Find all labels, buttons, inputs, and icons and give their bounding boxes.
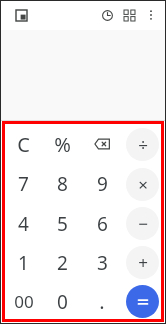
staticText: % <box>54 131 71 158</box>
staticText: C <box>17 131 30 158</box>
button[interactable]: History <box>96 4 118 26</box>
staticText: 4 <box>18 211 29 237</box>
button[interactable]: − <box>122 204 162 243</box>
staticText: 1 <box>18 250 29 276</box>
button[interactable]: Calculator mode <box>10 4 32 26</box>
button[interactable]: C <box>4 124 43 164</box>
staticText: 6 <box>97 211 108 237</box>
staticText: 2 <box>57 250 68 276</box>
button[interactable]: 2 <box>43 243 82 282</box>
button[interactable]: % <box>43 124 82 164</box>
button[interactable]: Scientific mode <box>118 4 140 26</box>
button[interactable]: 9 <box>82 164 122 204</box>
staticText: ÷ <box>138 133 148 156</box>
button[interactable]: Backspace <box>82 124 122 164</box>
button[interactable]: 3 <box>82 243 122 282</box>
staticText: 8 <box>57 171 68 197</box>
staticText: + <box>138 251 148 274</box>
button[interactable]: 8 <box>43 164 82 204</box>
button[interactable] <box>122 282 162 321</box>
button[interactable]: More options <box>140 4 162 26</box>
button[interactable]: 7 <box>4 164 43 204</box>
staticText: 00 <box>14 290 34 313</box>
button[interactable]: 6 <box>82 204 122 243</box>
staticText: 5 <box>57 211 68 237</box>
staticText: 9 <box>97 171 108 197</box>
button[interactable]: ÷ <box>122 124 162 164</box>
button[interactable]: 0 <box>43 282 82 321</box>
button[interactable]: 1 <box>4 243 43 282</box>
button[interactable]: 4 <box>4 204 43 243</box>
button[interactable]: 00 <box>4 282 43 321</box>
button[interactable]: 5 <box>43 204 82 243</box>
button[interactable]: + <box>122 243 162 282</box>
button[interactable]: . <box>82 282 122 321</box>
staticText: × <box>138 173 148 196</box>
staticText: − <box>138 212 148 235</box>
button[interactable]: × <box>122 164 162 204</box>
staticText: 3 <box>97 250 108 276</box>
staticText: 7 <box>18 171 29 197</box>
staticText: . <box>99 288 105 315</box>
staticText: 0 <box>57 289 68 315</box>
